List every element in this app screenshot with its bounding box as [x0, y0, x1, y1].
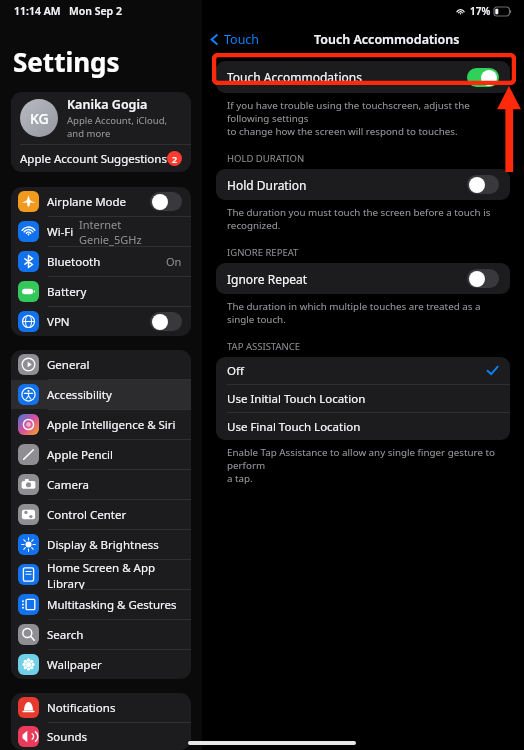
- staticText: TAP ASSISTANCE: [227, 340, 301, 353]
- staticText: Internet Genie_5GHz: [79, 217, 182, 246]
- button[interactable]: Home Screen & App Library: [11, 560, 191, 589]
- button[interactable]: General: [11, 350, 191, 379]
- staticText: Ignore Repeat: [227, 271, 308, 287]
- staticText: Kanika Gogia: [67, 96, 148, 113]
- button[interactable]: Apple Pencil: [11, 440, 191, 469]
- button[interactable]: Off: [216, 357, 510, 384]
- staticText: Mon Sep 2: [69, 4, 122, 18]
- staticText: Touch Accommodations: [227, 69, 362, 85]
- staticText: Wi-Fi: [47, 224, 74, 240]
- staticText: Apple Account, iCloud,: [67, 114, 168, 127]
- button[interactable]: Apple Intelligence & Siri: [11, 410, 191, 439]
- staticText: and more: [67, 127, 111, 140]
- button[interactable]: Apple Account Suggestions: [11, 145, 191, 172]
- button[interactable]: Touch: [202, 31, 266, 48]
- button[interactable]: Ignore Repeat: [216, 263, 510, 294]
- staticText: Off: [227, 363, 244, 379]
- button[interactable]: Search: [11, 620, 191, 649]
- staticText: Airplane Mode: [47, 194, 127, 210]
- staticText: Notifications: [47, 700, 116, 716]
- staticText: General: [47, 357, 90, 373]
- staticText: Bluetooth: [47, 254, 101, 270]
- button[interactable]: Toggle: [467, 269, 499, 288]
- button[interactable]: Accessibility: [11, 380, 191, 409]
- button[interactable]: Use Final Touch Location: [216, 413, 510, 440]
- staticText: Enable Tap Assistance to allow any singl…: [227, 446, 506, 485]
- staticText: Control Center: [47, 507, 127, 523]
- staticText: KG: [30, 109, 49, 128]
- button[interactable]: Notifications: [11, 693, 191, 722]
- staticText: Settings: [13, 44, 120, 79]
- staticText: On: [166, 254, 182, 269]
- staticText: The duration you must touch the screen b…: [227, 206, 506, 232]
- staticText: Hold Duration: [227, 177, 307, 193]
- button[interactable]: Sounds: [11, 723, 191, 750]
- button[interactable]: Toggle: [467, 68, 499, 87]
- staticText: Use Initial Touch Location: [227, 391, 366, 407]
- button[interactable]: Use Initial Touch Location: [216, 385, 510, 412]
- staticText: If you have trouble using the touchscree…: [227, 99, 506, 138]
- staticText: 11:14 AM: [14, 4, 61, 18]
- staticText: Multitasking & Gestures: [47, 597, 177, 613]
- staticText: HOLD DURATION: [227, 152, 305, 165]
- button[interactable]: Toggle: [467, 175, 499, 194]
- button[interactable]: Touch Accommodations: [216, 61, 510, 93]
- button[interactable]: Hold Duration: [216, 169, 510, 200]
- staticText: Sounds: [47, 729, 88, 745]
- staticText: Apple Pencil: [47, 447, 113, 463]
- staticText: Apple Intelligence & Siri: [47, 417, 176, 433]
- button[interactable]: Wi-Fi: [11, 217, 191, 246]
- staticText: 2: [172, 153, 178, 165]
- button[interactable]: Control Center: [11, 500, 191, 529]
- button[interactable]: Camera: [11, 470, 191, 499]
- button[interactable]: Wallpaper: [11, 650, 191, 679]
- staticText: Wallpaper: [47, 657, 102, 673]
- staticText: Touch Accommodations: [314, 31, 460, 48]
- button[interactable]: KG: [11, 92, 191, 144]
- staticText: Camera: [47, 477, 89, 493]
- staticText: VPN: [47, 314, 70, 330]
- staticText: Use Final Touch Location: [227, 419, 361, 435]
- staticText: Battery: [47, 284, 87, 300]
- button[interactable]: Battery: [11, 277, 191, 306]
- button[interactable]: Multitasking & Gestures: [11, 590, 191, 619]
- button[interactable]: VPN: [11, 307, 191, 336]
- staticText: 17%: [470, 4, 491, 18]
- staticText: Home Screen & App Library: [47, 560, 182, 589]
- staticText: Display & Brightness: [47, 537, 159, 553]
- button[interactable]: Toggle: [150, 192, 182, 211]
- staticText: IGNORE REPEAT: [227, 246, 299, 259]
- staticText: Search: [47, 627, 84, 643]
- button[interactable]: Toggle: [150, 312, 182, 331]
- button[interactable]: Display & Brightness: [11, 530, 191, 559]
- staticText: Accessibility: [47, 387, 112, 403]
- staticText: Apple Account Suggestions: [20, 151, 167, 167]
- button[interactable]: Airplane Mode: [11, 187, 191, 216]
- staticText: The duration in which multiple touches a…: [227, 300, 506, 326]
- button[interactable]: Bluetooth: [11, 247, 191, 276]
- staticText: Touch: [224, 31, 260, 48]
